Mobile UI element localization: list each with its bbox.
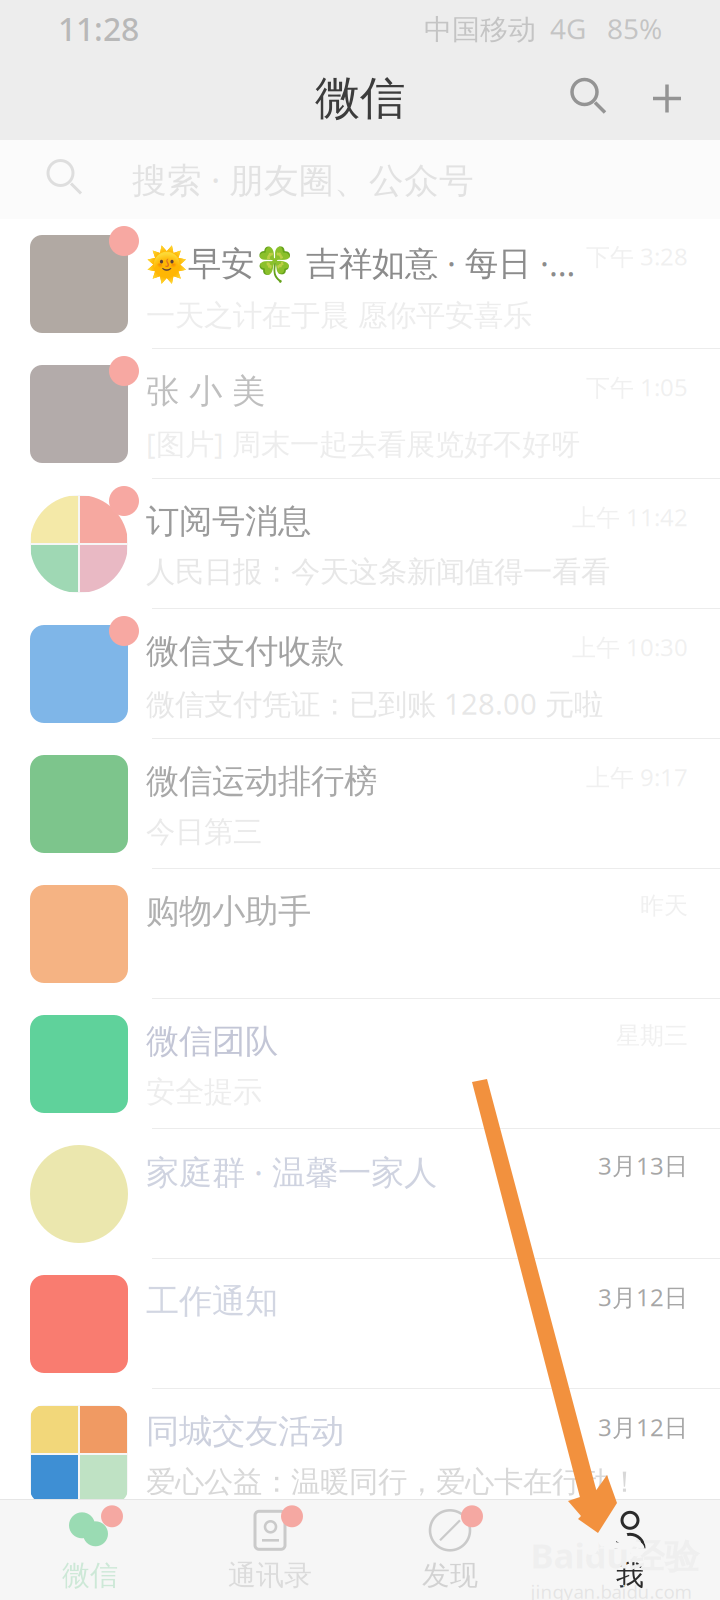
staticText: 3月13日 [598, 1149, 688, 1181]
button[interactable]: 通讯录 [180, 1500, 360, 1600]
staticText: 微信支付收款 [146, 631, 344, 672]
staticText: 家庭群 · 温馨一家人 [146, 1149, 437, 1194]
staticText: 昨天 [640, 891, 688, 920]
staticText: 微信运动排行榜 [146, 761, 377, 802]
button[interactable]: 🌞早安🍀 吉祥如意 · 每日 · 分享 [0, 219, 720, 349]
staticText: 3月12日 [598, 1281, 688, 1313]
staticText: 购物小助手 [146, 891, 311, 932]
button[interactable]: 订阅号消息 [0, 479, 720, 609]
staticText: 同城交友活动 [146, 1411, 344, 1452]
staticText: 一天之计在于晨 愿你平安喜乐 [146, 298, 532, 334]
button[interactable]: 张 小 美 [0, 349, 720, 479]
staticText: 张 小 美 [146, 371, 265, 412]
staticText: 上午 10:30 [572, 631, 688, 663]
staticText: 微信支付凭证：已到账 128.00 元啦 [146, 684, 603, 723]
staticText: [图片] 周末一起去看展览好不好呀 [146, 424, 580, 463]
button[interactable]: 微信支付收款 [0, 609, 720, 739]
staticText: Baidu经验 [530, 1532, 699, 1578]
staticText: 人民日报：今天这条新闻值得一看看 [146, 554, 610, 590]
button[interactable]: 搜索 [564, 71, 618, 125]
staticText: 工作通知 [146, 1281, 278, 1322]
button[interactable]: 同城交友活动 [0, 1389, 720, 1519]
staticText: 通讯录 [228, 1558, 312, 1593]
staticText: 3月12日 [598, 1411, 688, 1443]
staticText: 微信团队 [146, 1021, 278, 1062]
button[interactable]: 添加 [640, 71, 694, 125]
staticText: 我 [616, 1558, 644, 1593]
staticText: 🌞早安🍀 吉祥如意 · 每日 · 分享 [146, 240, 576, 286]
staticText: jingyan.baidu.com [530, 1579, 691, 1600]
button[interactable]: 微信 [0, 1500, 180, 1600]
button[interactable]: 搜索 · 朋友圈、公众号 [0, 140, 720, 219]
staticText: 安全提示 [146, 1074, 262, 1110]
staticText: 下午 3:28 [586, 240, 688, 272]
button[interactable]: 微信团队 [0, 999, 720, 1129]
button[interactable]: 微信运动排行榜 [0, 739, 720, 869]
button[interactable]: 发现 [360, 1500, 540, 1600]
staticText: 上午 11:42 [572, 501, 688, 533]
staticText: 中国移动 4G 85% [424, 10, 662, 47]
button[interactable]: 工作通知 [0, 1259, 720, 1389]
staticText: 微信 [62, 1558, 118, 1593]
staticText: 微信 [315, 71, 405, 126]
staticText: 11:28 [58, 7, 139, 50]
staticText: 爱心公益：温暖同行，爱心卡在行动！ [146, 1464, 639, 1500]
staticText: 今日第三 [146, 814, 262, 850]
button[interactable]: 家庭群 · 温馨一家人 [0, 1129, 720, 1259]
staticText: 搜索 · 朋友圈、公众号 [132, 156, 474, 202]
staticText: 订阅号消息 [146, 501, 311, 542]
button[interactable]: 购物小助手 [0, 869, 720, 999]
staticText: 星期三 [616, 1021, 688, 1050]
staticText: 下午 1:05 [586, 371, 688, 403]
button[interactable]: 我 [540, 1500, 720, 1600]
staticText: 发现 [422, 1558, 478, 1593]
staticText: 上午 9:17 [586, 761, 688, 793]
